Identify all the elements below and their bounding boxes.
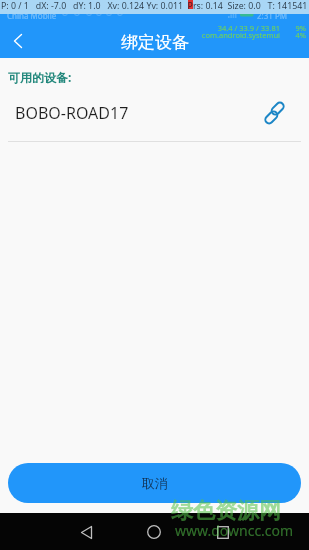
staticText: 34.4 / 33.9 / 33.81 (80, 23, 280, 33)
staticText: 9% (280, 23, 306, 33)
button[interactable]: Back (0, 23, 36, 59)
staticText: 4% (280, 30, 306, 40)
button[interactable]: Back (68, 514, 104, 550)
staticText: China Mobile (7, 10, 57, 21)
button[interactable]: 取消 (8, 463, 301, 503)
staticText: 可用的设备: (8, 69, 72, 85)
staticText: com.android.systemui (80, 30, 280, 40)
button[interactable]: Recents (205, 514, 241, 550)
staticText: www.downcc.com (175, 521, 294, 540)
button[interactable]: Home (136, 514, 172, 550)
staticText: BOBO-ROAD17 (15, 102, 129, 124)
staticText: 绑定设备 (121, 32, 189, 53)
staticText: 取消 (142, 475, 168, 491)
button[interactable]: BOBO-ROAD17 (0, 94, 309, 132)
staticText: 2:31 PM (257, 10, 288, 21)
staticText: P: 0 / 1 dX: -7.0 dY: 1.0 Xv: 0.124 Yv: … (1, 0, 308, 12)
staticText: 绿色资源网 (171, 497, 281, 525)
